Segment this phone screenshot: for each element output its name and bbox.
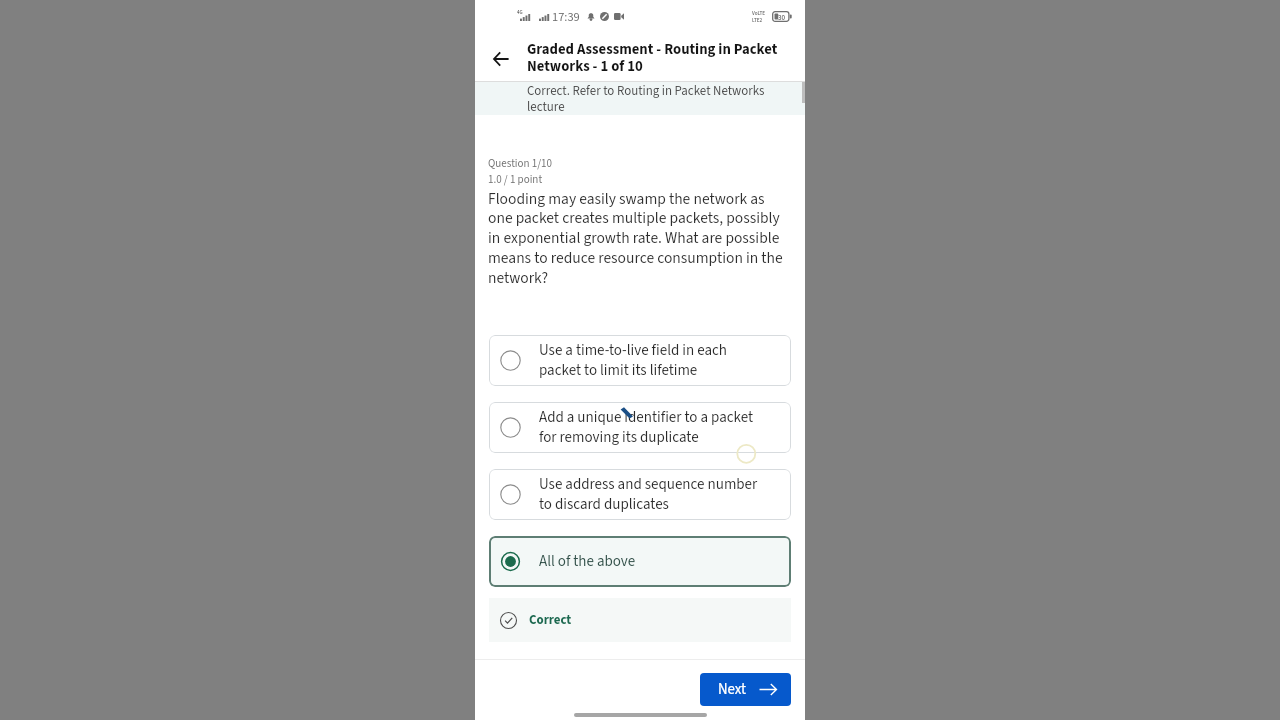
staticText: Use a time-to-live field in each packet …: [539, 340, 727, 381]
staticText: Question 1/10: [488, 156, 552, 172]
button[interactable]: Back: [487, 45, 515, 73]
staticText: All of the above: [539, 551, 636, 572]
staticText: Next: [718, 679, 747, 700]
staticText: Flooding may easily swamp the network as…: [488, 188, 783, 289]
staticText: LTE2: [752, 17, 763, 24]
staticText: Use address and sequence number to disca…: [539, 474, 758, 515]
button[interactable]: All of the above: [489, 536, 791, 587]
button[interactable]: Use a time-to-live field in each packet …: [489, 335, 791, 386]
staticText: Correct. Refer to Routing in Packet Netw…: [527, 82, 793, 115]
staticText: 1.0 / 1 point: [488, 172, 543, 188]
staticText: Add a unique identifier to a packet for …: [539, 407, 754, 448]
button[interactable]: Correct: [489, 598, 791, 642]
staticText: VoLTE: [752, 10, 766, 17]
button[interactable]: Next: [700, 673, 791, 706]
staticText: Graded Assessment - Routing in Packet Ne…: [527, 39, 778, 77]
staticText: 4G: [517, 9, 523, 16]
staticText: 30: [778, 13, 786, 23]
button[interactable]: Use address and sequence number to disca…: [489, 469, 791, 520]
button[interactable]: Add a unique identifier to a packet for …: [489, 402, 791, 453]
staticText: 17:39: [552, 8, 580, 26]
staticText: Correct: [529, 611, 572, 629]
